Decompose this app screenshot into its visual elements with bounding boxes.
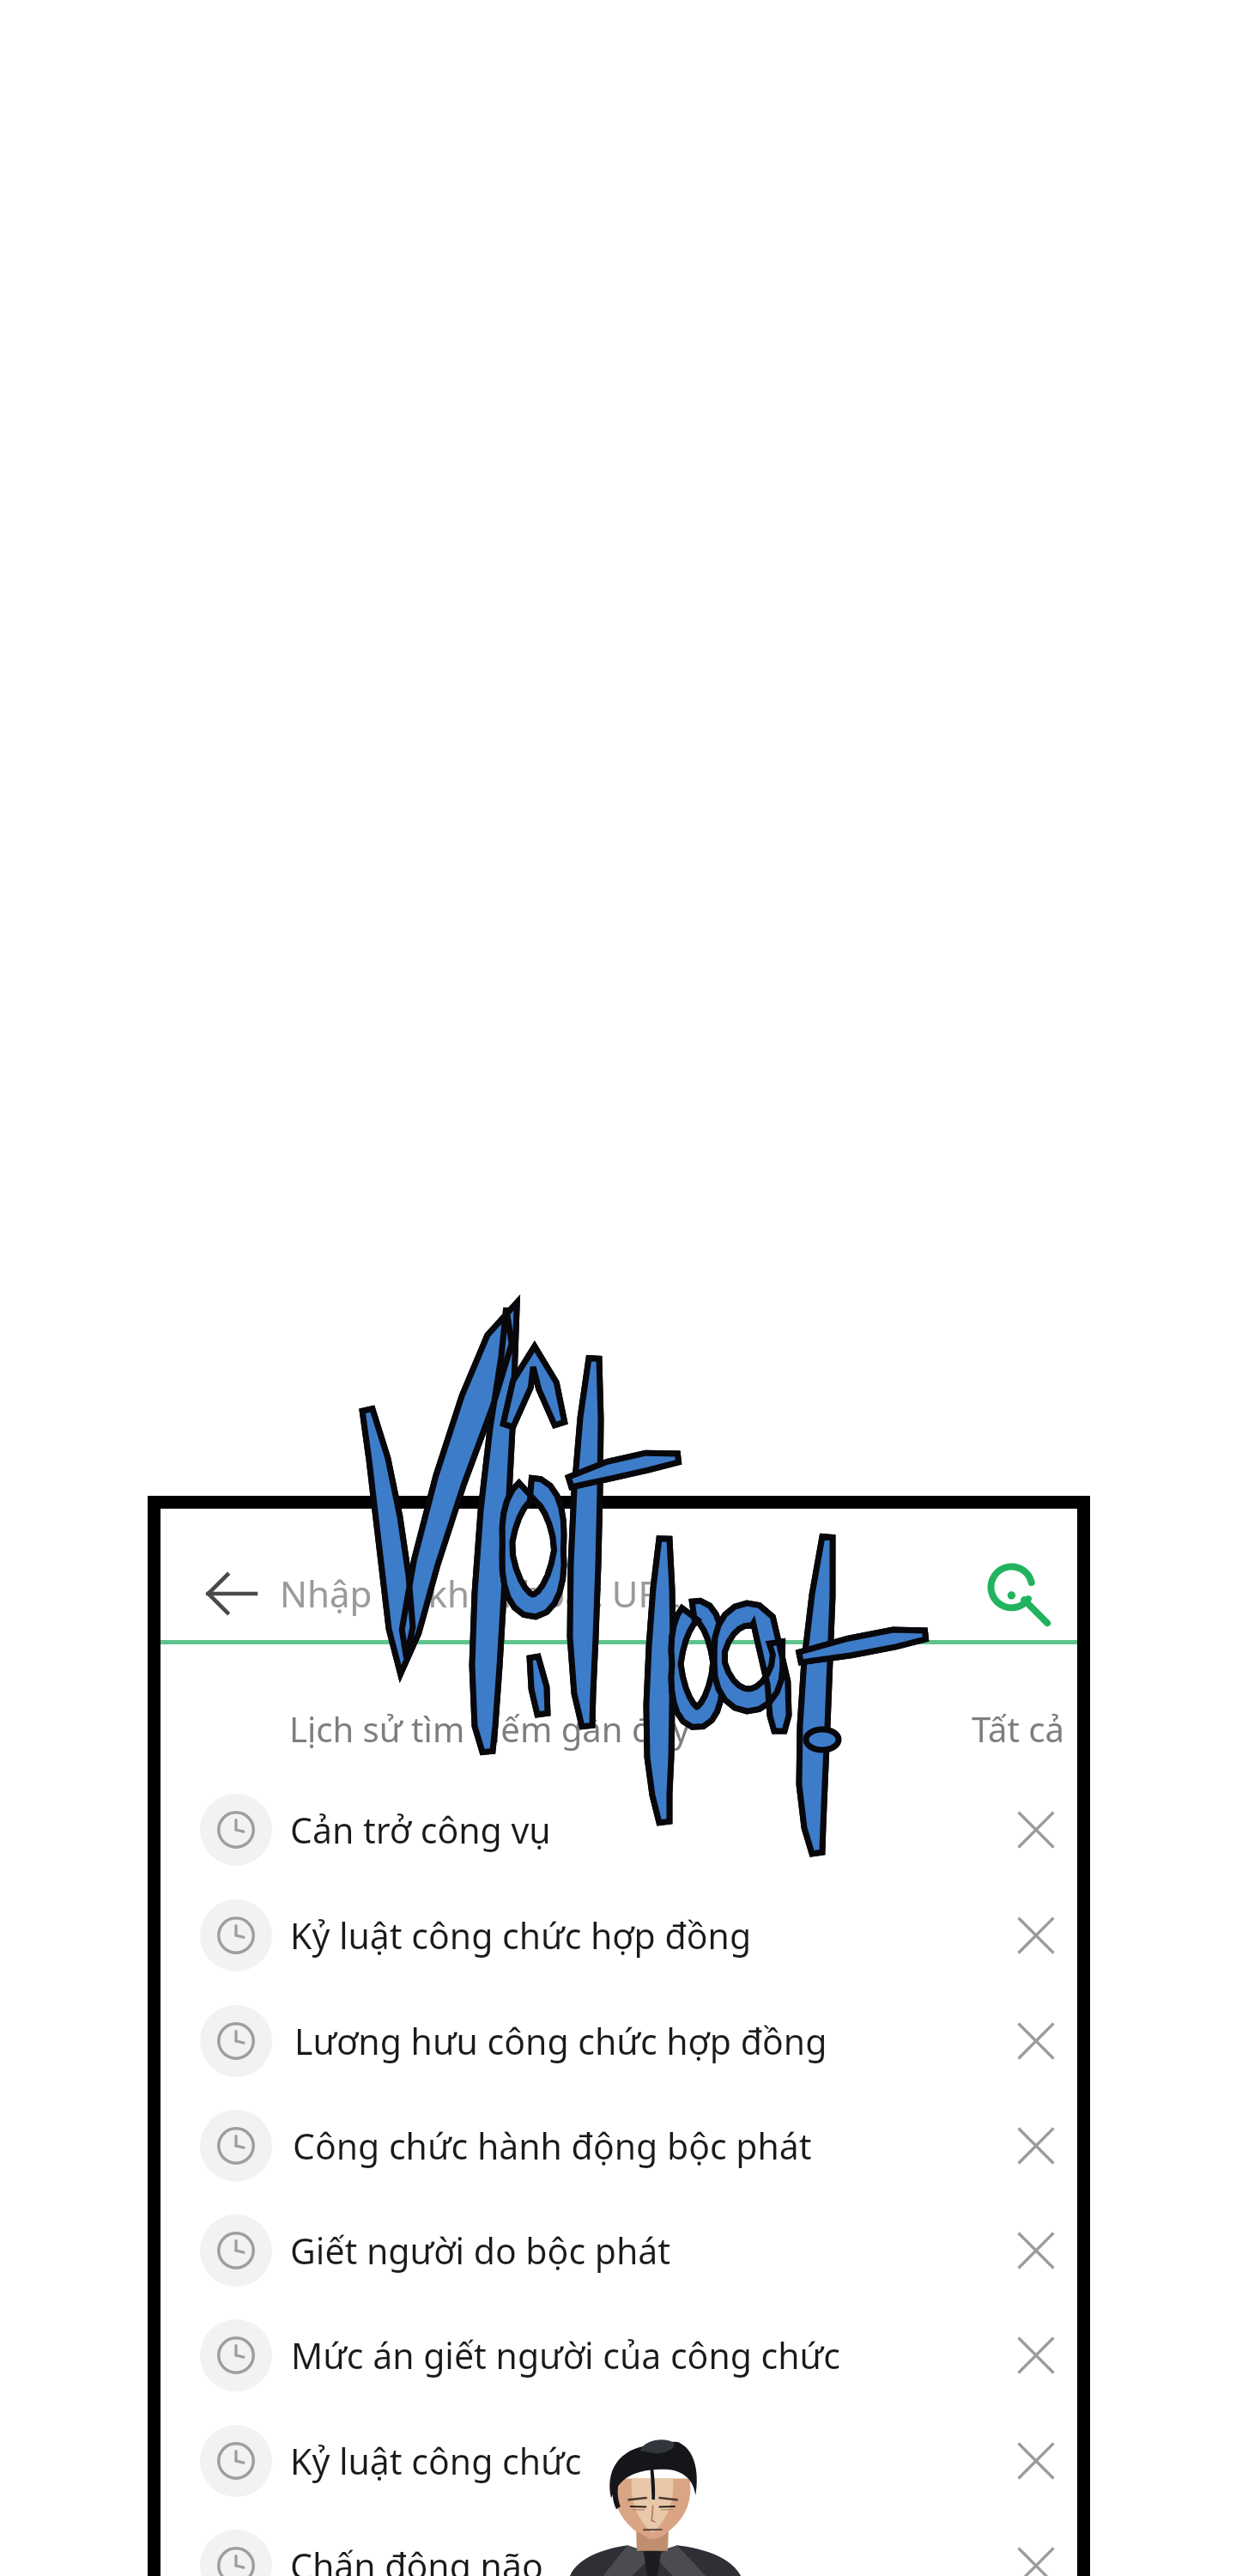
button[interactable]: Remove Cản trở công vụ xyxy=(990,1783,1082,1876)
button[interactable] xyxy=(161,2409,1077,2513)
button[interactable]: Back xyxy=(177,1539,287,1649)
button[interactable] xyxy=(161,1883,1077,1988)
staticText: Kỷ luật công chức hợp đồng xyxy=(290,1911,752,1959)
button[interactable] xyxy=(161,1777,1077,1882)
staticText: Tất cả xyxy=(972,1705,1064,1752)
staticText: Lịch sử tìm kiếm gần đây xyxy=(289,1705,690,1752)
staticText: Công chức hành động bộc phát xyxy=(293,2122,812,2170)
button[interactable]: Nhập từ khóa hoặc URL xyxy=(280,1537,932,1649)
staticText: Cản trở công vụ xyxy=(290,1806,551,1854)
button[interactable]: Remove Giết người do bộc phát xyxy=(990,2204,1082,2297)
button[interactable] xyxy=(161,2513,1077,2576)
staticText: Kỷ luật công chức xyxy=(290,2437,582,2485)
staticText: Giết người do bộc phát xyxy=(290,2227,671,2275)
staticText: Nhập từ khóa hoặc URL xyxy=(280,1569,680,1618)
button[interactable]: Remove Chấn động não xyxy=(990,2519,1082,2576)
button[interactable] xyxy=(161,2303,1077,2408)
staticText: Mức án giết người của công chức xyxy=(291,2331,840,2379)
staticText: Lương hưu công chức hợp đồng xyxy=(294,2017,827,2065)
button[interactable]: Remove Công chức hành động bộc phát xyxy=(990,2099,1082,2192)
button[interactable] xyxy=(161,2093,1077,2198)
button[interactable]: Tất cả xyxy=(910,1692,1064,1765)
staticText: Chấn động não xyxy=(290,2542,543,2576)
button[interactable] xyxy=(161,1989,1077,2093)
button[interactable]: Remove Lương hưu công chức hợp đồng xyxy=(990,1995,1082,2087)
button[interactable]: Search xyxy=(963,1539,1073,1649)
button[interactable]: Remove Kỷ luật công chức xyxy=(990,2415,1082,2507)
button[interactable]: Remove Mức án giết người của công chức xyxy=(990,2309,1082,2402)
button[interactable]: Remove Kỷ luật công chức hợp đồng xyxy=(990,1889,1082,1982)
button[interactable] xyxy=(161,2198,1077,2303)
